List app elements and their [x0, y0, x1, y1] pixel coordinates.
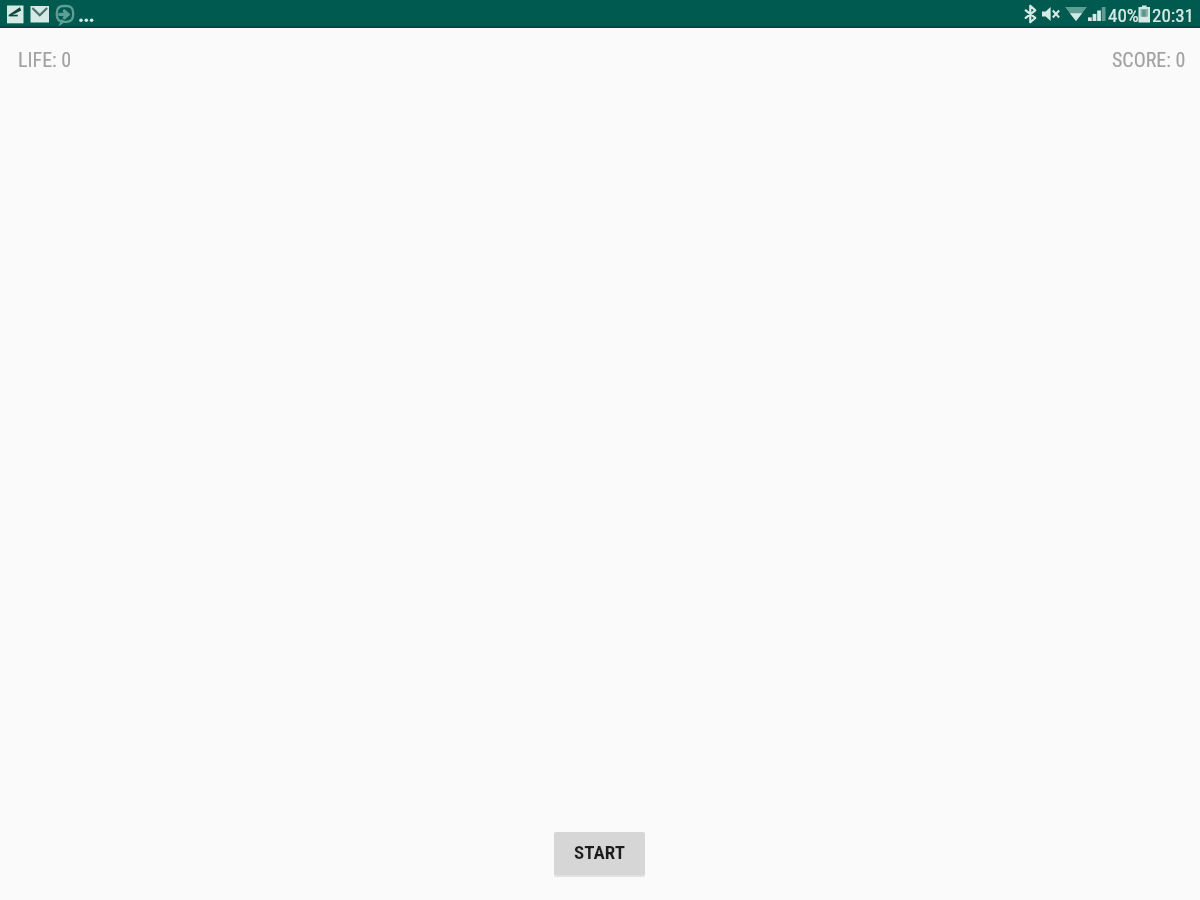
staticText: 20:31 — [1152, 4, 1194, 26]
staticText: SCORE: 0 — [1112, 48, 1186, 71]
staticText: START — [574, 841, 626, 863]
button[interactable]: Start game — [554, 832, 645, 875]
staticText: 40% — [1108, 4, 1139, 26]
other: System status bar — [0, 0, 1200, 28]
staticText: LIFE: 0 — [18, 48, 72, 71]
